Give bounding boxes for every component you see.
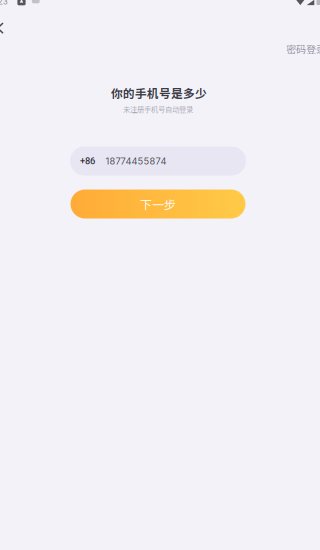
staticText: 未注册手机号自动登录 — [123, 104, 193, 114]
button[interactable]: Back — [0, 13, 14, 43]
button[interactable]: 密码登录 — [286, 35, 320, 63]
button[interactable]: +86 — [70, 146, 246, 175]
staticText: +86 — [80, 155, 95, 166]
staticText: 下一步 — [140, 195, 176, 213]
staticText: 18774455874 — [105, 155, 166, 167]
staticText: 密码登录 — [286, 42, 320, 56]
staticText: 你的手机号是多少 — [111, 84, 207, 101]
staticText: 10:23 — [0, 0, 8, 7]
button[interactable]: 下一步 — [70, 189, 245, 218]
